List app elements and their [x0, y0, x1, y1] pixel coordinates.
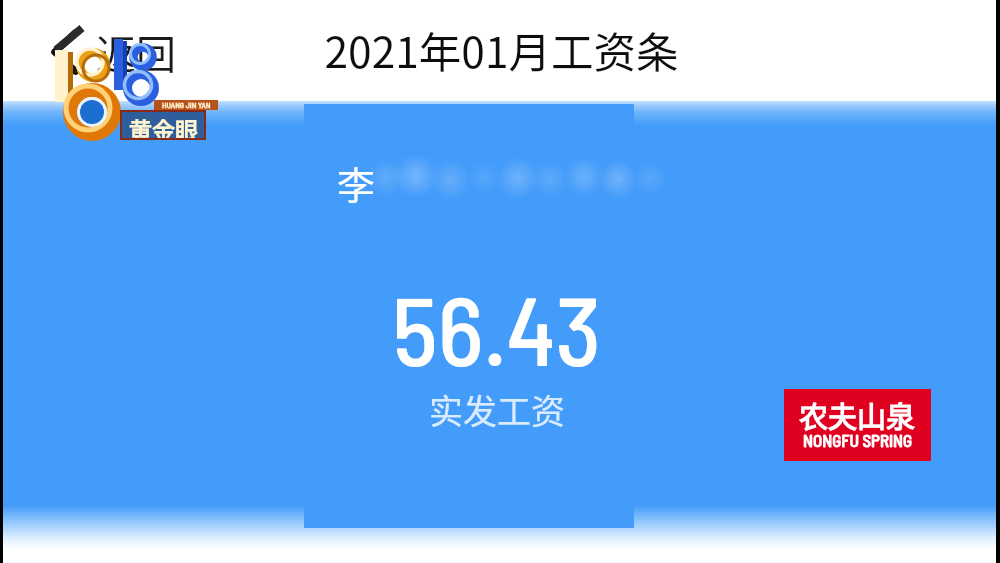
- staticText: 黄金眼: [129, 112, 198, 138]
- staticText: 56.43: [392, 269, 602, 385]
- staticText: NONGFU SPRING: [803, 430, 913, 450]
- button[interactable]: 李: [304, 104, 634, 528]
- staticText: 2021年01月工资条: [324, 19, 679, 81]
- staticText: 实发工资: [429, 385, 565, 434]
- button[interactable]: 返回: [48, 13, 186, 91]
- staticText: 返回: [96, 23, 176, 81]
- staticText: 李: [337, 155, 376, 210]
- staticText: 农夫山泉: [799, 394, 916, 436]
- staticText: HUANG JIN YAN: [162, 100, 211, 110]
